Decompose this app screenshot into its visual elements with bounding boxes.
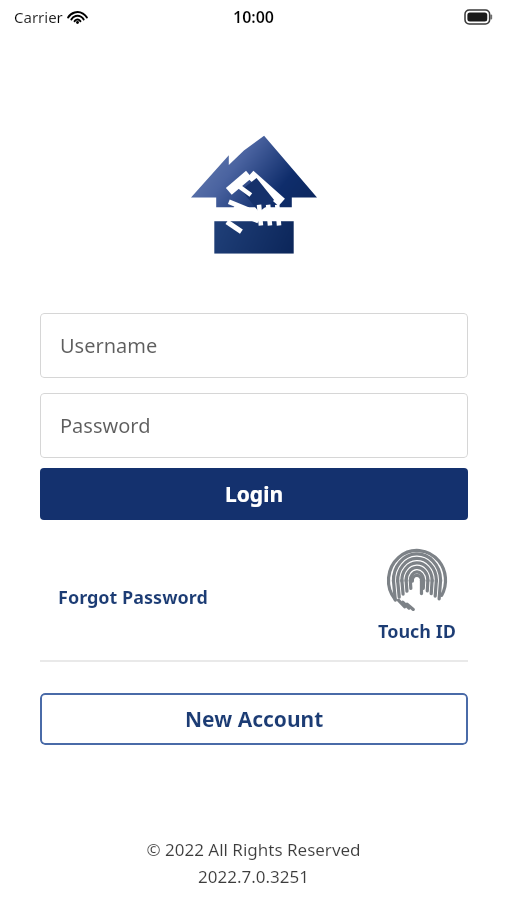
staticText: Forgot Password xyxy=(58,585,208,610)
button[interactable]: Login xyxy=(40,468,468,520)
button[interactable]: Touch ID xyxy=(366,548,468,646)
staticText: Carrier xyxy=(14,7,63,27)
staticText: © 2022 All Rights Reserved xyxy=(146,838,361,861)
button[interactable]: Forgot Password xyxy=(40,575,226,620)
staticText: 10:00 xyxy=(233,6,275,28)
button[interactable]: Username xyxy=(40,313,468,378)
button[interactable]: New Account xyxy=(40,693,468,745)
staticText: Password xyxy=(60,412,151,439)
staticText: Login xyxy=(225,480,284,509)
button[interactable]: Password xyxy=(40,393,468,458)
staticText: New Account xyxy=(185,705,324,734)
staticText: Username xyxy=(60,332,158,359)
staticText: 2022.7.0.3251 xyxy=(198,865,309,888)
staticText: Touch ID xyxy=(378,619,456,644)
